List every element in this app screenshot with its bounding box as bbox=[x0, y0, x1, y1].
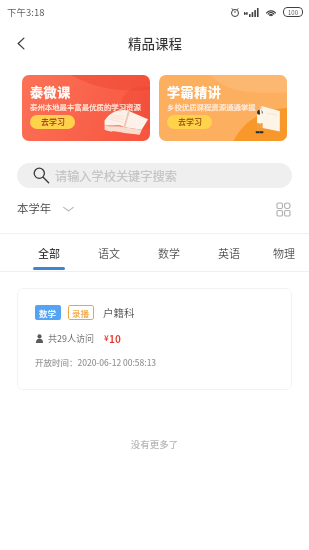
button[interactable]: 去学习 bbox=[30, 115, 75, 129]
staticText: 数学 bbox=[39, 307, 57, 319]
staticText: 精品课程 bbox=[128, 33, 182, 53]
button[interactable]: 数学 bbox=[139, 233, 199, 267]
button[interactable]: 去学习 bbox=[167, 115, 212, 129]
staticText: 录播 bbox=[72, 307, 90, 319]
staticText: 泰州本地最丰富最优质的学习资源 bbox=[30, 101, 141, 112]
staticText: 10 bbox=[109, 331, 121, 345]
staticText: 数学 bbox=[158, 245, 180, 261]
button[interactable]: 请输入学校关键字搜索 bbox=[17, 163, 292, 188]
staticText: 学霸精讲 bbox=[167, 82, 222, 101]
staticText: 下午3:18 bbox=[7, 5, 45, 19]
staticText: 全部 bbox=[38, 245, 60, 261]
staticText: 户籍科 bbox=[103, 305, 135, 320]
staticText: 请输入学校关键字搜索 bbox=[55, 167, 177, 185]
staticText: 100 bbox=[288, 8, 298, 17]
button[interactable]: 学霸精讲 bbox=[159, 75, 287, 141]
staticText: 没有更多了 bbox=[0, 437, 309, 451]
staticText: 泰微课 bbox=[30, 82, 71, 101]
staticText: 去学习 bbox=[178, 116, 202, 128]
button[interactable]: Grid view bbox=[272, 198, 294, 220]
staticText: 语文 bbox=[98, 245, 120, 261]
button[interactable]: 英语 bbox=[199, 233, 259, 267]
button[interactable]: 全部 bbox=[19, 233, 79, 270]
staticText: 开放时间：2020-06-12 00:58:13 bbox=[35, 356, 157, 368]
button[interactable]: Back bbox=[6, 28, 36, 58]
button[interactable]: 数学 bbox=[17, 288, 292, 390]
button[interactable]: 物理 bbox=[259, 233, 309, 267]
staticText: 乡校优质课程资源通通掌握 bbox=[167, 101, 256, 112]
staticText: 英语 bbox=[218, 245, 240, 261]
staticText: 物理 bbox=[273, 245, 295, 261]
staticText: 本学年 bbox=[17, 200, 52, 217]
staticText: 去学习 bbox=[41, 116, 65, 128]
button[interactable]: 泰微课 bbox=[22, 75, 150, 141]
button[interactable]: 本学年 bbox=[13, 198, 78, 219]
staticText: 共29人访问 bbox=[48, 332, 94, 345]
button[interactable]: 语文 bbox=[79, 233, 139, 267]
staticText: ¥ bbox=[104, 332, 109, 344]
